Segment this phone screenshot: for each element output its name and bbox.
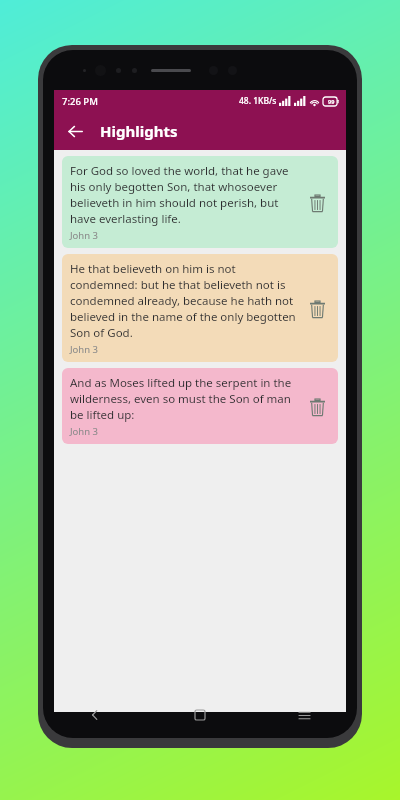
staticText: 7:26 PM [62, 95, 98, 108]
button[interactable]: And as Moses lifted up the serpent in th… [62, 368, 338, 444]
button[interactable]: For God so loved the world, that he gave… [62, 156, 338, 248]
button[interactable]: Delete highlight [300, 292, 334, 326]
staticText: He that believeth on him is not condemne… [70, 261, 296, 341]
staticText: John 3 [70, 229, 98, 242]
staticText: For God so loved the world, that he gave… [70, 163, 296, 227]
button[interactable]: Back [58, 114, 92, 148]
staticText: 48. 1KB/s [239, 95, 277, 107]
staticText: And as Moses lifted up the serpent in th… [70, 375, 296, 423]
staticText: 99 [328, 98, 335, 105]
staticText: John 3 [70, 343, 98, 356]
button[interactable]: Delete highlight [300, 390, 334, 424]
button[interactable]: Delete highlight [300, 186, 334, 220]
staticText: Highlights [100, 121, 178, 141]
button[interactable]: Home [147, 700, 252, 730]
button[interactable]: Recents [252, 700, 357, 730]
staticText: John 3 [70, 425, 98, 438]
button[interactable]: He that believeth on him is not condemne… [62, 254, 338, 362]
button[interactable]: Back [43, 700, 147, 730]
